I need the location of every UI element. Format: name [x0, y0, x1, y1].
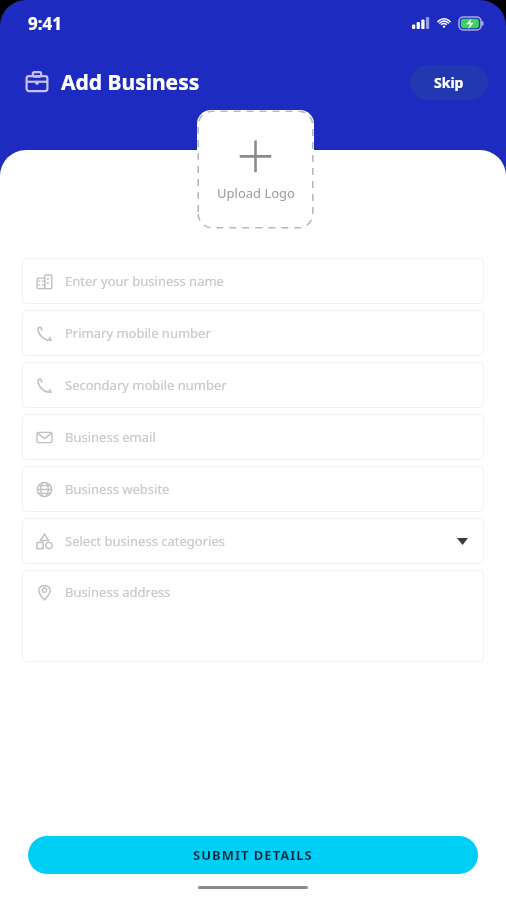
- staticText: Add Business: [61, 68, 200, 97]
- staticText: Primary mobile number: [65, 324, 211, 342]
- staticText: Business website: [65, 480, 170, 498]
- staticText: Business address: [65, 583, 171, 601]
- button[interactable]: Skip: [410, 65, 488, 100]
- button[interactable]: Secondary mobile number: [22, 362, 484, 408]
- staticText: Secondary mobile number: [65, 376, 227, 394]
- button[interactable]: Primary mobile number: [22, 310, 484, 356]
- button[interactable]: Upload Logo: [197, 110, 314, 229]
- staticText: Select business categories: [65, 532, 225, 550]
- button[interactable]: Business email: [22, 414, 484, 460]
- staticText: 9:41: [28, 12, 62, 35]
- staticText: Enter your business name: [65, 272, 224, 290]
- button[interactable]: Business website: [22, 466, 484, 512]
- staticText: Skip: [434, 73, 464, 92]
- staticText: Business email: [65, 428, 156, 446]
- staticText: Upload Logo: [217, 184, 295, 202]
- button[interactable]: Enter your business name: [22, 258, 484, 304]
- button[interactable]: SUBMIT DETAILS: [28, 836, 478, 874]
- button[interactable]: Business address: [22, 570, 484, 662]
- staticText: SUBMIT DETAILS: [193, 846, 313, 864]
- button[interactable]: Select business categories: [22, 518, 484, 564]
